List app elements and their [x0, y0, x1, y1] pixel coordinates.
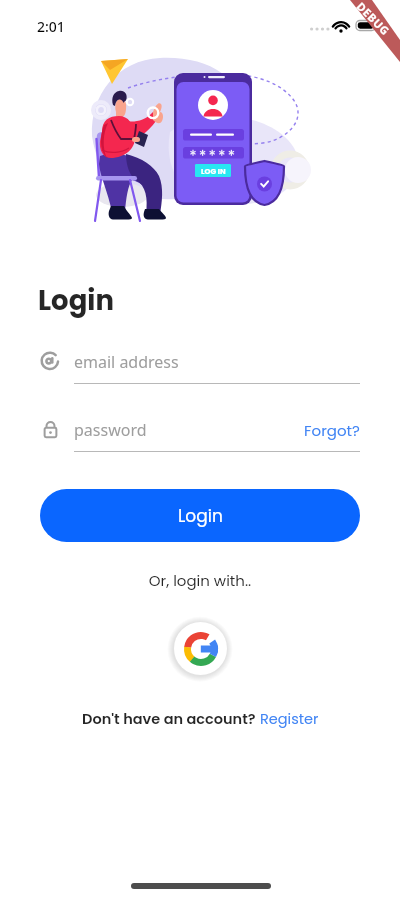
staticText: Login [178, 504, 223, 528]
staticText: Login [38, 281, 114, 319]
button[interactable]: Sign in with Google [174, 622, 227, 675]
button[interactable]: Register [260, 709, 319, 729]
staticText: email address [74, 351, 179, 373]
staticText: DEBUG [354, 0, 393, 38]
staticText: Don't have an account? [82, 709, 260, 729]
button[interactable]: Forgot? [304, 420, 360, 441]
staticText: 2:01 [37, 17, 65, 36]
button[interactable]: Login [40, 489, 360, 542]
staticText: Or, login with.. [0, 570, 400, 591]
staticText: LOG IN [201, 166, 226, 176]
staticText: password [74, 419, 147, 441]
